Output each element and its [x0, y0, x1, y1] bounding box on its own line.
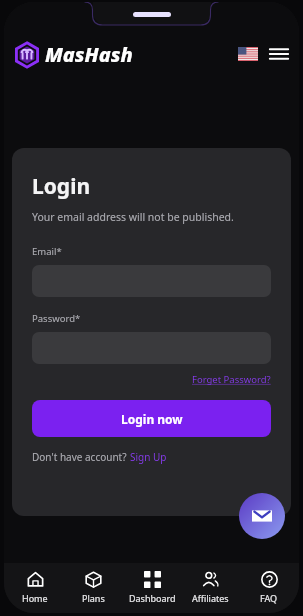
- staticText: Dashboard: [129, 592, 176, 604]
- button[interactable]: Language: [238, 47, 258, 61]
- button[interactable]: Plans: [65, 569, 121, 606]
- button[interactable]: Dashboard: [124, 569, 180, 606]
- staticText: MasHash: [45, 41, 133, 68]
- staticText: Email*: [32, 245, 62, 258]
- staticText: Home: [22, 592, 48, 604]
- button[interactable]: MasHash: [14, 41, 133, 68]
- staticText: Affiliates: [192, 592, 229, 604]
- staticText: FAQ: [260, 592, 278, 604]
- staticText: Password*: [32, 312, 81, 325]
- button[interactable]: Menu: [269, 44, 289, 64]
- button[interactable]: Login now: [32, 400, 271, 437]
- staticText: Login: [32, 172, 91, 201]
- button[interactable]: Contact: [239, 493, 285, 539]
- staticText: Your email address will not be published…: [32, 210, 234, 224]
- button[interactable]: Affiliates: [182, 569, 238, 606]
- button[interactable]: FAQ: [241, 569, 297, 606]
- staticText: Don't have account?: [32, 450, 130, 464]
- button[interactable]: Sign Up: [130, 450, 167, 464]
- button[interactable]: Forget Password?: [192, 373, 271, 386]
- staticText: Login now: [121, 411, 183, 427]
- button[interactable]: Home: [7, 569, 63, 606]
- staticText: Plans: [82, 592, 105, 604]
